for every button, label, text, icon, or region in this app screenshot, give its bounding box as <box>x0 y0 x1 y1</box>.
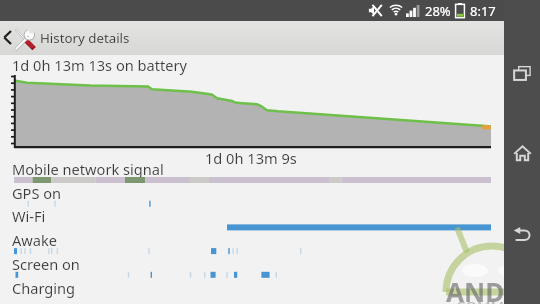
staticText: 28% <box>425 2 451 20</box>
button[interactable]: Mobile network signal <box>0 156 540 180</box>
staticText: Wi-Fi <box>12 206 46 226</box>
staticText: ANDROID <box>446 274 540 304</box>
button[interactable]: Charging <box>0 275 540 299</box>
button[interactable] <box>0 21 540 55</box>
staticText: Screen on <box>12 254 80 274</box>
staticText: Charging <box>12 278 76 298</box>
button[interactable]: Awake <box>0 227 540 251</box>
button[interactable]: Recents <box>504 55 540 91</box>
staticText: History details <box>40 29 130 47</box>
staticText: COMMUNITY <box>456 296 540 304</box>
staticText: Awake <box>12 230 58 250</box>
button[interactable]: Wi-Fi <box>0 203 540 227</box>
staticText: GPS on <box>12 183 62 203</box>
staticText: Mobile network signal <box>12 159 164 179</box>
button[interactable]: Back <box>504 215 540 251</box>
staticText: 1d 0h 13m 9s <box>205 148 297 168</box>
staticText: 1d 0h 13m 13s on battery <box>12 55 187 75</box>
button[interactable]: Screen on <box>0 251 540 275</box>
staticText: 8:17 <box>470 2 496 20</box>
button[interactable]: Up, History details <box>0 21 130 55</box>
button[interactable]: Home <box>504 135 540 171</box>
button[interactable]: GPS on <box>0 180 540 204</box>
